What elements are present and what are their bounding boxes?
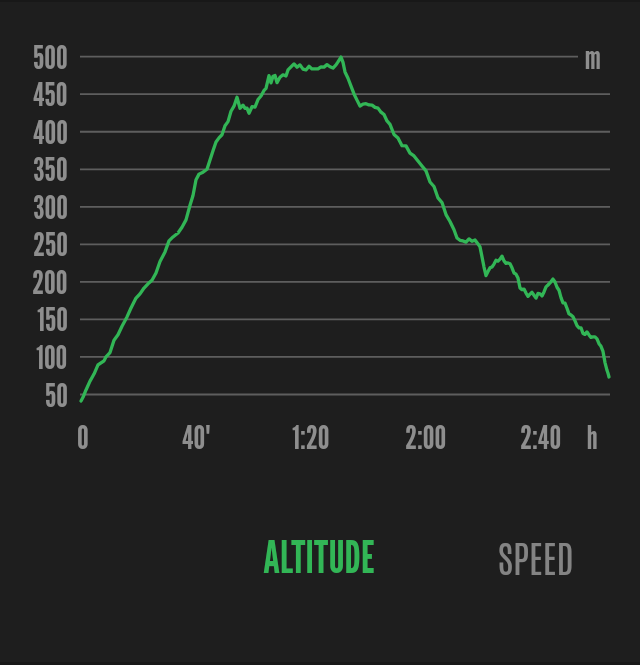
button[interactable]: ALTITUDE	[214, 522, 424, 590]
staticText: 300	[33, 187, 68, 227]
staticText: 150	[37, 299, 68, 339]
button[interactable]: SPEED	[456, 522, 616, 590]
staticText: m	[585, 37, 601, 77]
staticText: ALTITUDE	[263, 530, 376, 583]
staticText: 2:40	[520, 417, 562, 457]
staticText: 500	[33, 37, 68, 77]
staticText: 350	[33, 149, 68, 189]
staticText: 100	[36, 337, 68, 377]
staticText: SPEED	[498, 532, 574, 580]
staticText: 200	[32, 262, 68, 302]
staticText: 250	[33, 224, 68, 264]
staticText: 450	[33, 74, 68, 114]
staticText: 0	[77, 417, 89, 457]
staticText: 50	[45, 375, 68, 415]
staticText: h	[587, 417, 598, 457]
staticText: 2:00	[405, 417, 447, 457]
staticText: 40'	[182, 417, 211, 457]
staticText: 1:20	[292, 417, 330, 457]
staticText: 400	[33, 112, 68, 152]
